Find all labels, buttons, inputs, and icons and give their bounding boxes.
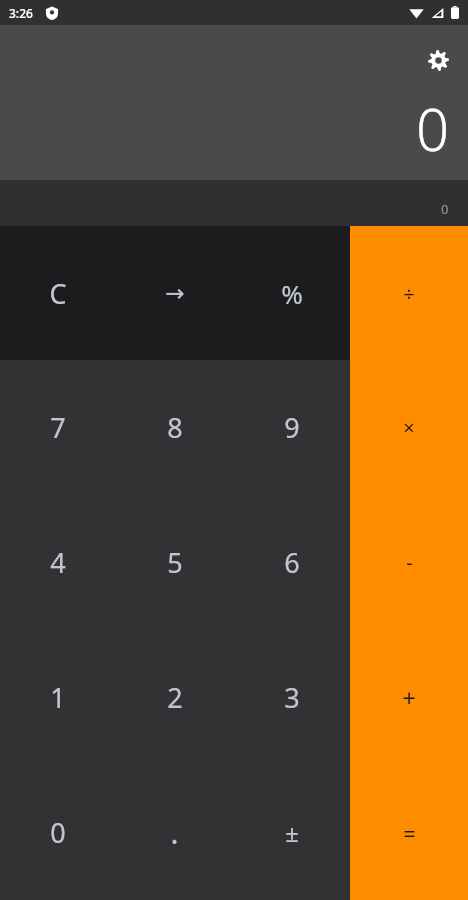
- staticText: 6: [284, 544, 300, 581]
- staticText: =: [403, 818, 416, 848]
- staticText: 3:26: [9, 5, 33, 21]
- button[interactable]: 9: [233, 360, 350, 495]
- staticText: 2: [167, 679, 183, 716]
- button[interactable]: 5: [116, 495, 233, 630]
- staticText: ×: [403, 414, 415, 441]
- staticText: 9: [284, 409, 300, 446]
- staticText: 1: [50, 679, 66, 716]
- staticText: C: [49, 275, 67, 312]
- staticText: 0: [50, 814, 66, 851]
- staticText: .: [170, 812, 179, 853]
- button[interactable]: .: [116, 765, 233, 900]
- staticText: →: [165, 280, 185, 307]
- button[interactable]: 0: [0, 765, 116, 900]
- button[interactable]: 7: [0, 360, 116, 495]
- staticText: 8: [167, 409, 183, 446]
- staticText: 7: [50, 409, 66, 446]
- staticText: -: [406, 549, 413, 576]
- button[interactable]: %: [233, 226, 350, 360]
- staticText: 3: [284, 679, 300, 716]
- button[interactable]: +: [350, 630, 468, 765]
- button[interactable]: =: [350, 765, 468, 900]
- staticText: 0: [416, 89, 450, 168]
- staticText: 0: [441, 200, 449, 218]
- staticText: 5: [167, 544, 183, 581]
- staticText: ±: [285, 816, 299, 849]
- staticText: +: [402, 681, 416, 714]
- button[interactable]: 3: [233, 630, 350, 765]
- staticText: %: [281, 276, 303, 311]
- button[interactable]: Settings: [426, 48, 450, 72]
- button[interactable]: 1: [0, 630, 116, 765]
- button[interactable]: →: [116, 226, 233, 360]
- button[interactable]: ±: [233, 765, 350, 900]
- staticText: 4: [50, 544, 66, 581]
- button[interactable]: -: [350, 495, 468, 630]
- button[interactable]: 4: [0, 495, 116, 630]
- button[interactable]: 6: [233, 495, 350, 630]
- button[interactable]: 8: [116, 360, 233, 495]
- button[interactable]: ÷: [350, 226, 468, 360]
- button[interactable]: 2: [116, 630, 233, 765]
- button[interactable]: C: [0, 226, 116, 360]
- staticText: ÷: [403, 280, 415, 307]
- button[interactable]: ×: [350, 360, 468, 495]
